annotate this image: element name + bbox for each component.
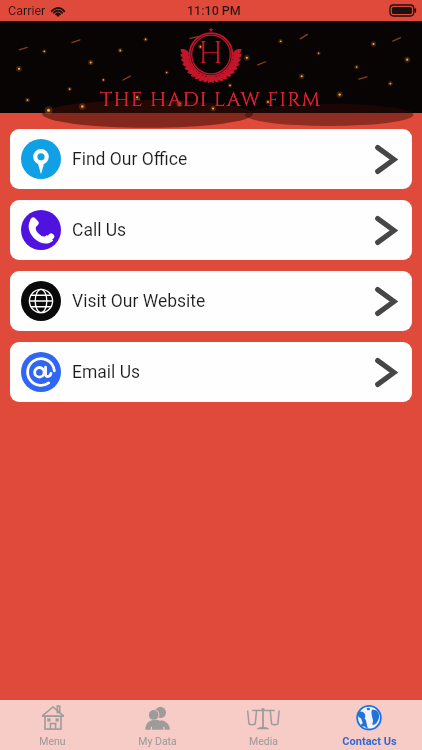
staticText: Visit Our Website — [72, 291, 206, 312]
button[interactable]: Menu — [0, 700, 105, 750]
staticText: THE HADI LAW FIRM — [100, 86, 322, 113]
button[interactable]: Media — [210, 700, 316, 750]
staticText: Media — [249, 735, 278, 747]
staticText: THE HADI LAW FIRM — [100, 86, 322, 113]
staticText: Contact Us — [342, 735, 397, 748]
staticText: Carrier — [8, 3, 46, 18]
staticText: Email Us — [72, 362, 141, 383]
button[interactable]: My Data — [105, 700, 210, 750]
button[interactable]: Email Us — [10, 342, 412, 402]
button[interactable]: Find Our Office — [10, 129, 412, 189]
button[interactable]: Call Us — [10, 200, 412, 260]
staticText: Menu — [39, 735, 66, 747]
staticText: H — [198, 33, 224, 75]
staticText: Find Our Office — [72, 149, 188, 170]
button[interactable]: Contact Us — [316, 700, 422, 750]
button[interactable]: Visit Our Website — [10, 271, 412, 331]
staticText: 11:10 PM — [187, 3, 241, 18]
staticText: My Data — [138, 735, 177, 747]
staticText: THE HADI LAW FIRM — [100, 86, 322, 113]
staticText: Call Us — [72, 220, 127, 241]
